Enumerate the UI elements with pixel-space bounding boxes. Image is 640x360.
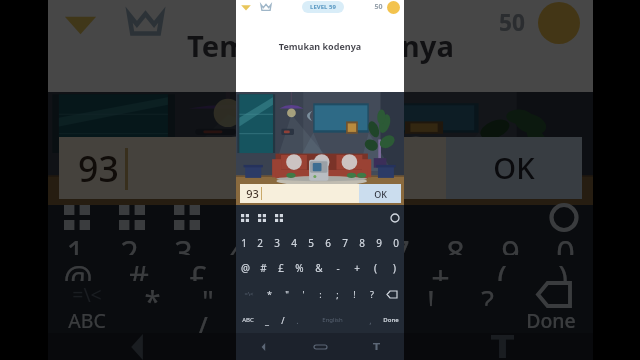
button[interactable]: ABC	[48, 307, 126, 333]
button[interactable]: Done	[378, 307, 404, 333]
button[interactable]: 2	[102, 230, 156, 255]
button[interactable]: ;	[329, 281, 346, 307]
button[interactable]: Clipboard	[174, 205, 200, 230]
button[interactable]: 93	[246, 184, 359, 203]
button[interactable]: ?	[459, 281, 515, 307]
button[interactable]: (	[471, 255, 532, 281]
button[interactable]: 0	[387, 230, 404, 255]
button[interactable]: .	[291, 307, 303, 333]
button[interactable]: 7	[336, 230, 353, 255]
button[interactable]: Back	[48, 333, 229, 360]
button[interactable]: !	[346, 281, 363, 307]
staticText: )	[393, 261, 396, 275]
button[interactable]: 3	[268, 230, 285, 255]
button[interactable]: Done	[509, 307, 593, 333]
button[interactable]: LEVEL 59	[290, 10, 374, 36]
button[interactable]: &	[288, 255, 349, 281]
button[interactable]: -	[349, 255, 410, 281]
button[interactable]: 4	[285, 230, 302, 255]
button[interactable]: Back	[236, 333, 292, 360]
button[interactable]: Hint	[61, 3, 100, 42]
button[interactable]: 8	[353, 230, 370, 255]
button[interactable]: "	[278, 281, 295, 307]
button[interactable]: /	[275, 307, 291, 333]
button[interactable]: £	[168, 255, 228, 281]
button[interactable]: OK	[359, 184, 401, 203]
button[interactable]: Crown	[126, 3, 165, 42]
button[interactable]: Settings	[551, 205, 577, 230]
button[interactable]: Home	[292, 333, 348, 360]
button[interactable]: GIF	[119, 205, 145, 230]
button[interactable]: @	[236, 255, 254, 281]
button[interactable]: %	[290, 255, 309, 281]
button[interactable]: Recents	[348, 333, 404, 360]
button[interactable]: 7	[373, 230, 428, 255]
button[interactable]: Home	[229, 333, 411, 360]
button[interactable]: English	[303, 307, 362, 333]
button[interactable]: 1	[48, 230, 102, 255]
button[interactable]: 1	[236, 230, 252, 255]
button[interactable]: +	[347, 255, 366, 281]
button[interactable]: Crown	[260, 1, 272, 13]
button[interactable]: Backspace	[380, 281, 404, 307]
button[interactable]: 6	[319, 230, 336, 255]
button[interactable]: 6	[318, 230, 373, 255]
button[interactable]: 2	[252, 230, 268, 255]
button[interactable]: +	[410, 255, 471, 281]
button[interactable]: &	[309, 255, 328, 281]
button[interactable]: #	[108, 255, 168, 281]
button[interactable]: Hint	[240, 1, 252, 13]
button[interactable]: Stickers	[241, 214, 249, 222]
staticText: 50	[499, 7, 525, 38]
button[interactable]: 8	[428, 230, 483, 255]
button[interactable]: Settings	[391, 214, 399, 222]
button[interactable]: :	[291, 281, 347, 307]
button[interactable]: Clipboard	[275, 214, 283, 222]
staticText: )	[558, 255, 568, 281]
button[interactable]: Stickers	[64, 205, 90, 230]
button[interactable]: '	[235, 281, 291, 307]
staticText: 0	[393, 236, 399, 250]
button[interactable]: ?	[363, 281, 380, 307]
button[interactable]: 9	[370, 230, 387, 255]
button[interactable]: (	[366, 255, 385, 281]
button[interactable]: OK	[446, 137, 582, 199]
button[interactable]: .	[228, 307, 267, 333]
button[interactable]: 0	[538, 230, 593, 255]
button[interactable]: #	[254, 255, 272, 281]
button[interactable]: /	[177, 307, 228, 333]
button[interactable]: @	[48, 255, 108, 281]
button[interactable]: 93	[78, 137, 446, 199]
button[interactable]: *	[261, 281, 278, 307]
button[interactable]: GIF	[258, 214, 266, 222]
button[interactable]: ;	[347, 281, 403, 307]
button[interactable]: English	[267, 307, 458, 333]
staticText: %	[245, 255, 272, 281]
button[interactable]: _	[259, 307, 275, 333]
button[interactable]: 5	[264, 230, 318, 255]
button[interactable]: '	[295, 281, 312, 307]
button[interactable]: *	[125, 281, 180, 307]
button[interactable]: 3	[156, 230, 210, 255]
button[interactable]: £	[272, 255, 290, 281]
staticText: OK	[493, 148, 535, 188]
button[interactable]: 4	[210, 230, 264, 255]
button[interactable]: =\<	[236, 281, 261, 307]
button[interactable]: LEVEL 59	[310, 3, 336, 11]
button[interactable]: Recents	[411, 333, 593, 360]
button[interactable]: 5	[302, 230, 319, 255]
button[interactable]: "	[180, 281, 235, 307]
button[interactable]: ABC	[236, 307, 259, 333]
button[interactable]: )	[532, 255, 593, 281]
button[interactable]: :	[312, 281, 329, 307]
button[interactable]: -	[328, 255, 347, 281]
button[interactable]: 9	[483, 230, 538, 255]
button[interactable]: )	[385, 255, 404, 281]
button[interactable]: !	[403, 281, 459, 307]
button[interactable]: Backspace	[515, 281, 593, 307]
button[interactable]: %	[228, 255, 288, 281]
